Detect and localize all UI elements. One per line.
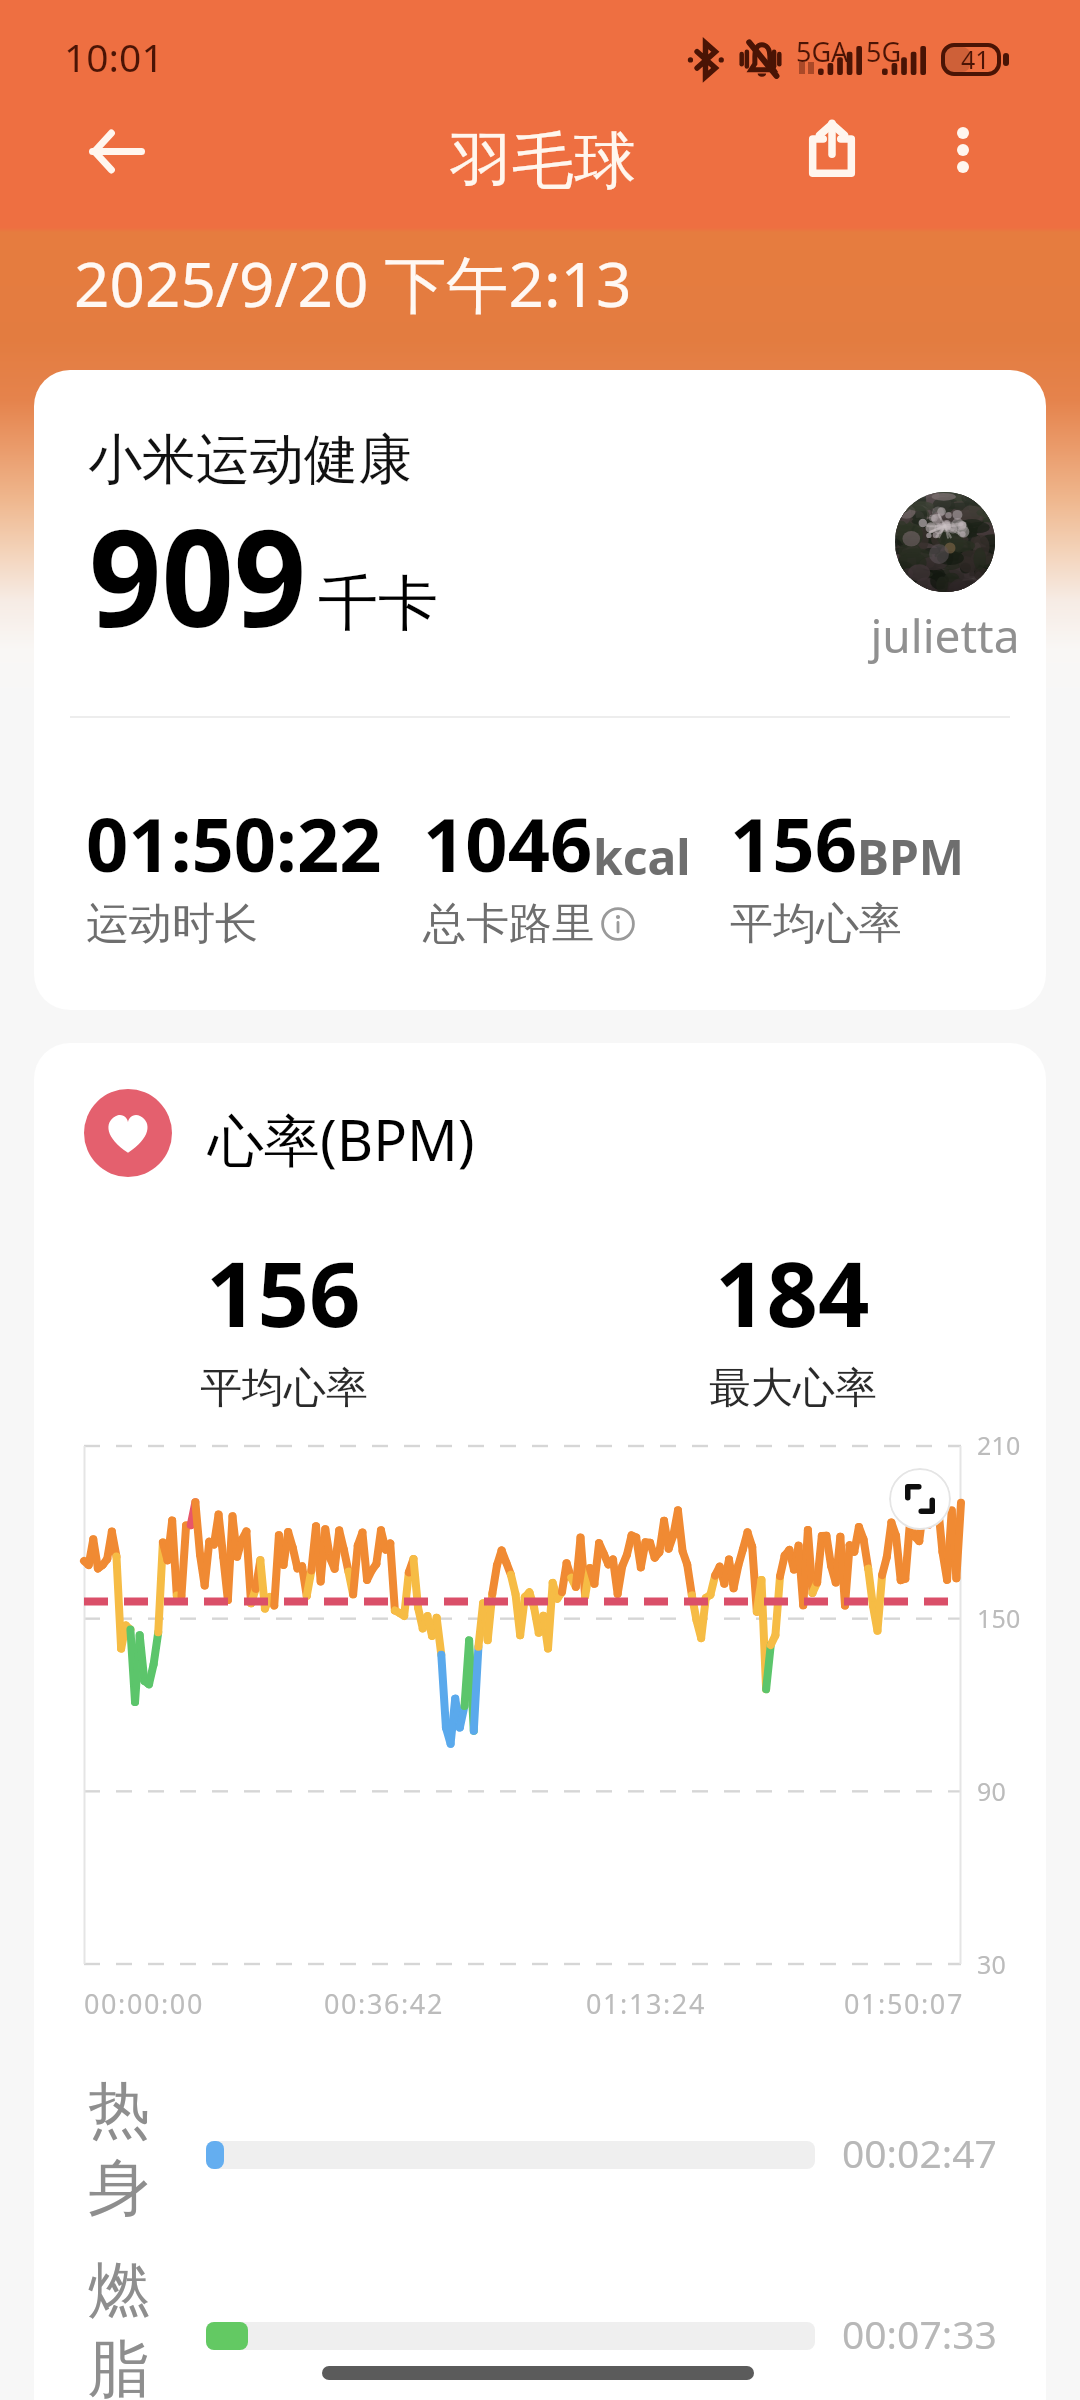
- staticText: 平均心率: [730, 897, 902, 951]
- staticText: 羽毛球: [450, 122, 636, 200]
- staticText: 脂: [88, 2330, 150, 2400]
- staticText: 909: [89, 484, 306, 667]
- button[interactable]: Share: [788, 104, 876, 192]
- staticText: 00:36:42: [324, 1985, 444, 2022]
- staticText: 燃: [88, 2252, 150, 2330]
- staticText: 156: [730, 793, 857, 894]
- staticText: 184: [715, 1231, 870, 1354]
- staticText: 156: [206, 1231, 361, 1354]
- staticText: 身: [88, 2149, 150, 2227]
- staticText: julietta: [825, 604, 1046, 667]
- staticText: 30: [977, 1947, 1007, 1981]
- button[interactable]: Back: [73, 107, 161, 195]
- staticText: 00:07:33: [842, 2307, 997, 2360]
- staticText: BPM: [857, 824, 964, 889]
- staticText: 热: [88, 2071, 150, 2149]
- button[interactable]: More options: [919, 106, 1007, 194]
- staticText: 01:50:22: [86, 793, 382, 894]
- staticText: 00:00:00: [84, 1985, 204, 2022]
- staticText: 心率(BPM): [208, 1101, 475, 1177]
- staticText: 150: [977, 1601, 1021, 1635]
- staticText: 总卡路里: [423, 897, 595, 951]
- staticText: 210: [977, 1428, 1021, 1462]
- staticText: 运动时长: [86, 897, 258, 951]
- staticText: 5GA: [796, 33, 849, 70]
- staticText: 最大心率: [709, 1362, 877, 1415]
- staticText: 5G: [866, 33, 902, 70]
- staticText: 平均心率: [200, 1362, 368, 1415]
- staticText: 01:13:24: [586, 1985, 706, 2022]
- staticText: 41: [961, 42, 990, 75]
- staticText: 01:50:07: [844, 1985, 964, 2022]
- button[interactable]: 小米运动健康: [34, 370, 1046, 1010]
- staticText: 1046: [423, 793, 593, 894]
- staticText: 千卡: [318, 566, 438, 642]
- staticText: 2025/9/20 下午2:13: [74, 241, 632, 326]
- staticText: 小米运动健康: [88, 426, 412, 494]
- staticText: 00:02:47: [842, 2126, 997, 2179]
- staticText: 90: [977, 1774, 1007, 1808]
- staticText: kcal: [593, 824, 691, 889]
- staticText: 10:01: [64, 30, 164, 83]
- button[interactable]: Expand chart: [889, 1468, 951, 1530]
